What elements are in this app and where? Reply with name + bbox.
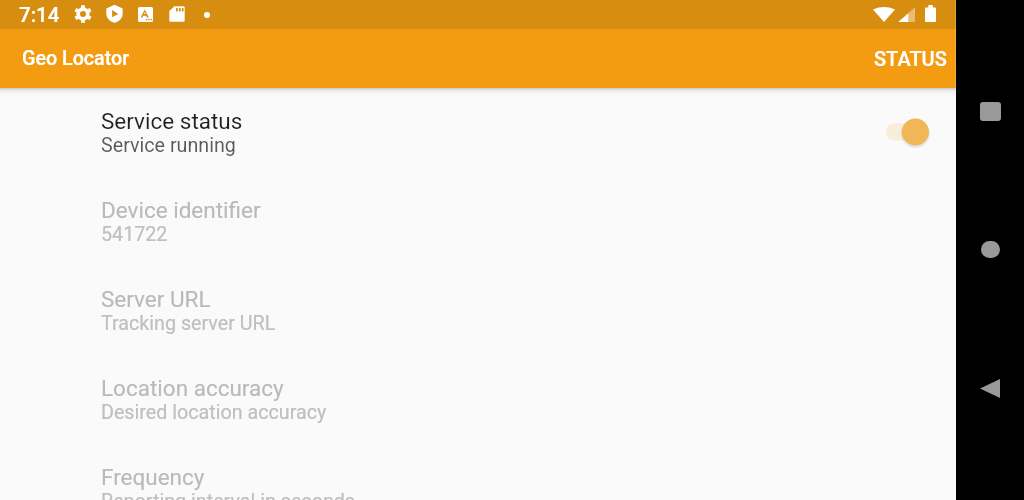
staticText: Geo Locator — [22, 47, 130, 70]
button[interactable]: Home — [970, 229, 1010, 269]
staticText: 541722 — [101, 223, 168, 246]
staticText: Location accuracy — [101, 375, 284, 401]
button[interactable]: Back — [970, 368, 1010, 408]
staticText: Reporting interval in seconds — [101, 490, 356, 500]
staticText: Frequency — [101, 464, 205, 490]
staticText: Service running — [101, 134, 236, 157]
button[interactable]: Service status toggle — [876, 116, 932, 148]
staticText: Device identifier — [101, 197, 261, 223]
button[interactable]: Server URL — [0, 266, 956, 355]
staticText: Service status — [101, 108, 243, 134]
button[interactable]: Frequency — [0, 444, 956, 500]
button[interactable]: Location accuracy — [0, 355, 956, 444]
button[interactable]: Recents — [970, 91, 1010, 131]
button[interactable]: Device identifier — [0, 177, 956, 266]
staticText: STATUS — [874, 47, 947, 70]
button[interactable]: Service status — [0, 88, 956, 177]
staticText: Desired location accuracy — [101, 401, 327, 424]
button[interactable]: STATUS — [860, 37, 956, 80]
staticText: 7:14 — [19, 3, 60, 27]
staticText: Server URL — [101, 286, 211, 312]
staticText: Tracking server URL — [101, 312, 276, 335]
